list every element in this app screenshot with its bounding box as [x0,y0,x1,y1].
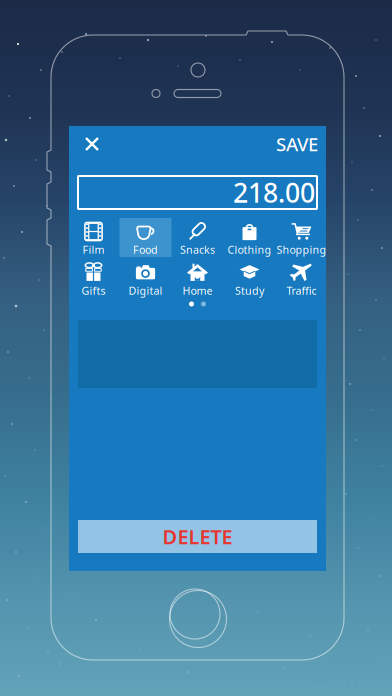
button[interactable]: Study [223,259,275,298]
staticText: Digital [128,283,162,298]
staticText: 218.00 [233,175,315,210]
button[interactable]: Traffic [275,259,327,298]
staticText: Food [133,242,158,257]
staticText: Shopping [276,242,326,257]
staticText: Study [235,283,264,298]
staticText: Clothing [227,242,271,257]
button[interactable]: SAVE [274,129,320,159]
button[interactable]: Food [119,218,171,257]
staticText: Film [82,242,104,257]
staticText: DELETE [162,523,232,550]
staticText: Gifts [81,283,105,298]
button[interactable]: Clothing [223,218,275,257]
button[interactable]: DELETE [78,520,317,553]
staticText: Traffic [286,283,316,298]
button[interactable]: Snacks [171,218,223,257]
staticText: Snacks [180,242,215,257]
button[interactable]: Gifts [67,259,119,298]
button[interactable]: Digital [119,259,171,298]
button[interactable]: 218.00 [78,176,317,209]
button[interactable]: Film [67,218,119,257]
button[interactable]: Close [75,129,109,159]
staticText: SAVE [276,132,318,156]
staticText: Home [182,283,212,298]
button[interactable]: Shopping [275,218,327,257]
button[interactable]: Home [171,259,223,298]
